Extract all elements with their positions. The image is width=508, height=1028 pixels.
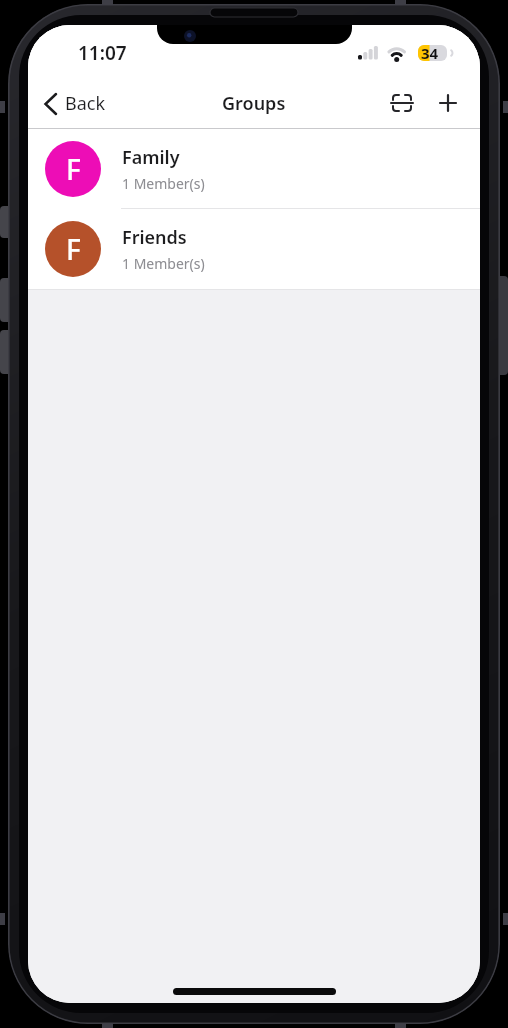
button[interactable]: F xyxy=(28,209,480,289)
staticText: 1 Member(s) xyxy=(122,174,205,193)
button[interactable]: F xyxy=(28,129,480,209)
button[interactable]: Back xyxy=(42,91,106,116)
button[interactable] xyxy=(440,95,456,111)
staticText: 1 Member(s) xyxy=(122,254,205,273)
staticText: F xyxy=(66,230,81,268)
staticText: F xyxy=(66,150,81,188)
staticText: Family xyxy=(122,145,180,170)
button[interactable] xyxy=(391,93,413,113)
staticText: Groups xyxy=(222,91,286,116)
staticText: Back xyxy=(65,91,106,116)
staticText: 34 xyxy=(421,43,439,63)
staticText: Friends xyxy=(122,225,187,250)
staticText: 11:07 xyxy=(78,40,127,66)
